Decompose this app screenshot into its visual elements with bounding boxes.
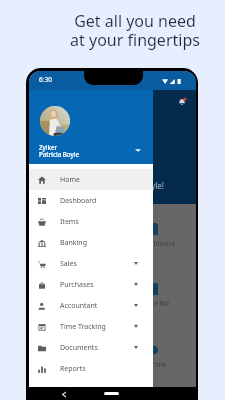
staticText: Zylker Patricia Boyle [39, 143, 80, 158]
button[interactable]: Log Time [139, 334, 191, 380]
button[interactable]: Create Bill [139, 273, 191, 319]
staticText: Create Bill [138, 299, 169, 308]
button[interactable]: Switch organisation [133, 145, 143, 155]
staticText: Reports [60, 364, 86, 374]
button[interactable]: Purchases [29, 274, 153, 295]
button[interactable]: New Invoice [139, 213, 191, 259]
staticText: Home [60, 175, 80, 185]
button[interactable]: Banking [29, 232, 153, 253]
button[interactable]: Documents [29, 337, 153, 358]
button[interactable]: Home [104, 392, 119, 395]
staticText: Hello Patricia Boyle! [34, 180, 164, 191]
staticText: Log Time [138, 360, 167, 369]
button[interactable]: Time Tracking [29, 316, 153, 337]
staticText: Banking [60, 238, 87, 248]
button[interactable]: Back [59, 388, 71, 400]
staticText: Purchases [60, 280, 94, 290]
button[interactable]: Items [29, 211, 153, 232]
button[interactable]: Accountant [29, 295, 153, 316]
staticText: Items [60, 217, 79, 227]
button[interactable]: Notifications [177, 97, 187, 107]
staticText: Time Tracking [60, 322, 106, 332]
staticText: Get all you need at your fingertips [60, 10, 210, 51]
button[interactable]: Sales [29, 253, 153, 274]
button[interactable]: Dashboard [29, 190, 153, 211]
staticText: Sales [60, 259, 77, 269]
staticText: New Invoice [138, 239, 176, 248]
staticText: Dashboard [60, 196, 97, 206]
staticText: Accountant [60, 301, 98, 311]
staticText: 6:30 [39, 75, 52, 84]
button[interactable]: Home [29, 169, 153, 190]
staticText: Documents [60, 343, 98, 353]
button[interactable]: Reports [29, 358, 153, 379]
